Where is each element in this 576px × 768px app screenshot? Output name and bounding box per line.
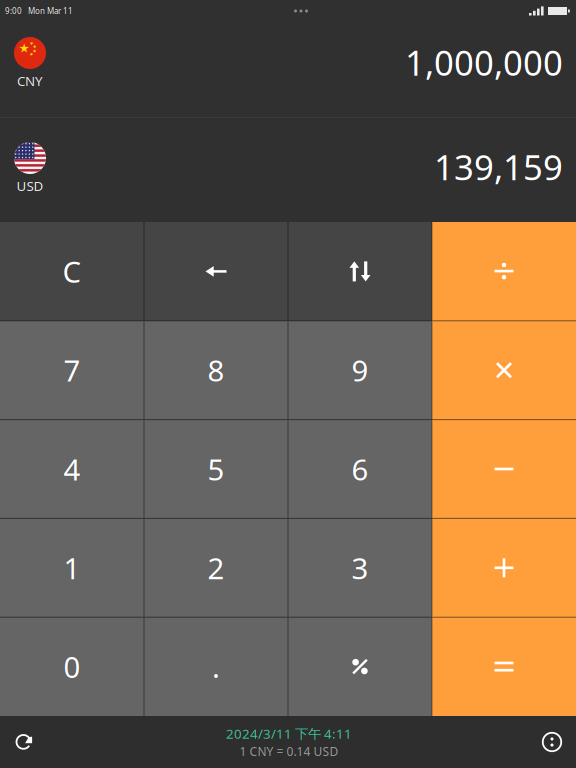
button[interactable]	[144, 222, 288, 321]
staticText: CNY	[17, 72, 43, 90]
staticText: C	[62, 252, 81, 291]
staticText: 139,159	[434, 144, 563, 190]
button[interactable]: CNY	[0, 22, 576, 117]
staticText: .	[212, 647, 220, 686]
staticText: 1,000,000	[405, 39, 563, 85]
button[interactable]: 3	[288, 518, 432, 617]
button[interactable]	[288, 617, 432, 716]
button[interactable]: 1	[0, 518, 144, 617]
staticText: 0	[63, 647, 80, 686]
button[interactable]: 4	[0, 420, 144, 518]
button[interactable]: USD	[0, 118, 576, 222]
button[interactable]: 2	[144, 518, 288, 617]
staticText: 5	[207, 449, 224, 488]
staticText: 1	[63, 548, 80, 587]
staticText: 2	[207, 548, 224, 587]
staticText: 3	[351, 548, 368, 587]
button[interactable]: 7	[0, 321, 144, 420]
button[interactable]	[288, 222, 432, 321]
staticText: 2024/3/11 下午 4:11	[226, 725, 352, 742]
button[interactable]: C	[0, 222, 144, 321]
button[interactable]: 8	[144, 321, 288, 420]
button[interactable]	[432, 617, 576, 716]
button[interactable]	[432, 518, 576, 617]
staticText: 7	[63, 351, 80, 390]
staticText: 1 CNY = 0.14 USD	[239, 743, 338, 759]
button[interactable]: 9	[288, 321, 432, 420]
button[interactable]	[432, 321, 576, 420]
button[interactable]	[432, 420, 576, 518]
button[interactable]: More options	[528, 716, 576, 768]
staticText: 6	[351, 449, 368, 488]
button[interactable]	[432, 222, 576, 321]
staticText: 4	[63, 449, 80, 488]
staticText: 9:00	[5, 6, 22, 16]
button[interactable]: 6	[288, 420, 432, 518]
staticText: Mon Mar 11	[28, 6, 73, 16]
staticText: USD	[16, 177, 43, 195]
button[interactable]: .	[144, 617, 288, 716]
staticText: 9	[351, 351, 368, 390]
button[interactable]: Refresh exchange rate	[0, 716, 50, 768]
button[interactable]: 5	[144, 420, 288, 518]
staticText: 8	[207, 351, 224, 390]
button[interactable]: 0	[0, 617, 144, 716]
